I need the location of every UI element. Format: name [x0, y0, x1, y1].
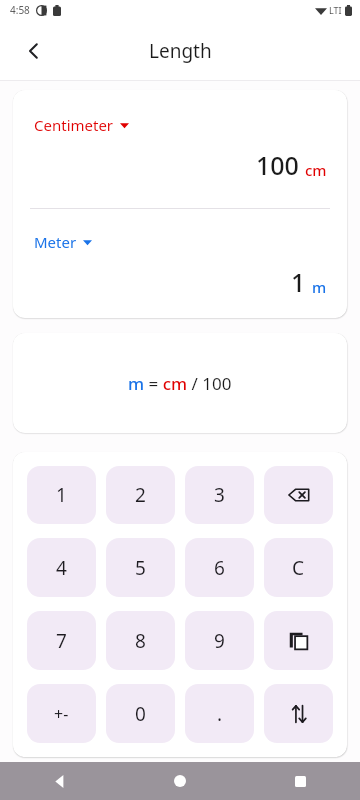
- button[interactable]: Back: [12, 29, 56, 73]
- staticText: 1: [291, 265, 306, 299]
- staticText: .: [217, 701, 223, 727]
- button[interactable]: 8: [106, 611, 175, 670]
- staticText: cm: [305, 160, 327, 180]
- staticText: 3: [214, 482, 225, 508]
- button[interactable]: 0: [106, 684, 175, 743]
- button[interactable]: .: [185, 684, 254, 743]
- staticText: 4:58: [10, 3, 30, 17]
- staticText: 4: [56, 555, 67, 581]
- staticText: 7: [56, 628, 67, 654]
- staticText: Centimeter: [34, 115, 114, 135]
- staticText: m = cm / 100: [128, 372, 232, 395]
- staticText: 5: [135, 555, 146, 581]
- button[interactable]: 3: [185, 466, 254, 524]
- button[interactable]: 2: [106, 466, 175, 524]
- button[interactable]: Copy: [264, 611, 333, 670]
- button[interactable]: 6: [185, 538, 254, 597]
- staticText: 100: [256, 148, 299, 182]
- button[interactable]: Back: [0, 762, 120, 800]
- staticText: Meter: [34, 232, 77, 252]
- staticText: 0: [135, 701, 146, 727]
- button[interactable]: Recent apps: [240, 762, 360, 800]
- staticText: 9: [214, 628, 225, 654]
- staticText: +-: [54, 703, 69, 725]
- staticText: Length: [149, 38, 212, 64]
- staticText: C: [292, 555, 305, 581]
- staticText: LTI: [329, 4, 342, 16]
- staticText: m: [312, 277, 327, 297]
- button[interactable]: Meter: [32, 230, 94, 254]
- staticText: 2: [135, 482, 146, 508]
- button[interactable]: 1: [27, 466, 96, 524]
- button[interactable]: C: [264, 538, 333, 597]
- button[interactable]: Centimeter: [32, 113, 131, 137]
- button[interactable]: +-: [27, 684, 96, 743]
- button[interactable]: Backspace: [264, 466, 333, 524]
- staticText: 1: [56, 482, 67, 508]
- staticText: 8: [135, 628, 146, 654]
- button[interactable]: Home: [120, 762, 240, 800]
- staticText: 6: [214, 555, 225, 581]
- button[interactable]: 9: [185, 611, 254, 670]
- button[interactable]: 4: [27, 538, 96, 597]
- button[interactable]: 7: [27, 611, 96, 670]
- button[interactable]: 5: [106, 538, 175, 597]
- button[interactable]: Swap units: [264, 684, 333, 743]
